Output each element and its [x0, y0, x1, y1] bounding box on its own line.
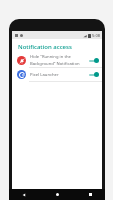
button[interactable]: Recent apps	[86, 190, 95, 199]
button[interactable]: Toggle notification access	[88, 70, 99, 79]
staticText: 5:08	[92, 33, 100, 38]
staticText: Background" Notification	[30, 61, 80, 67]
button[interactable]: Pixel Launcher	[12, 68, 102, 81]
button[interactable]: Home	[53, 190, 62, 199]
button[interactable]: Hide "Running in the	[12, 54, 102, 67]
button[interactable]: Back	[19, 190, 28, 199]
staticText: Notification access	[18, 43, 72, 51]
staticText: Pixel Launcher	[30, 72, 59, 78]
staticText: Hide "Running in the	[30, 54, 71, 60]
button[interactable]: Toggle notification access	[88, 56, 99, 65]
